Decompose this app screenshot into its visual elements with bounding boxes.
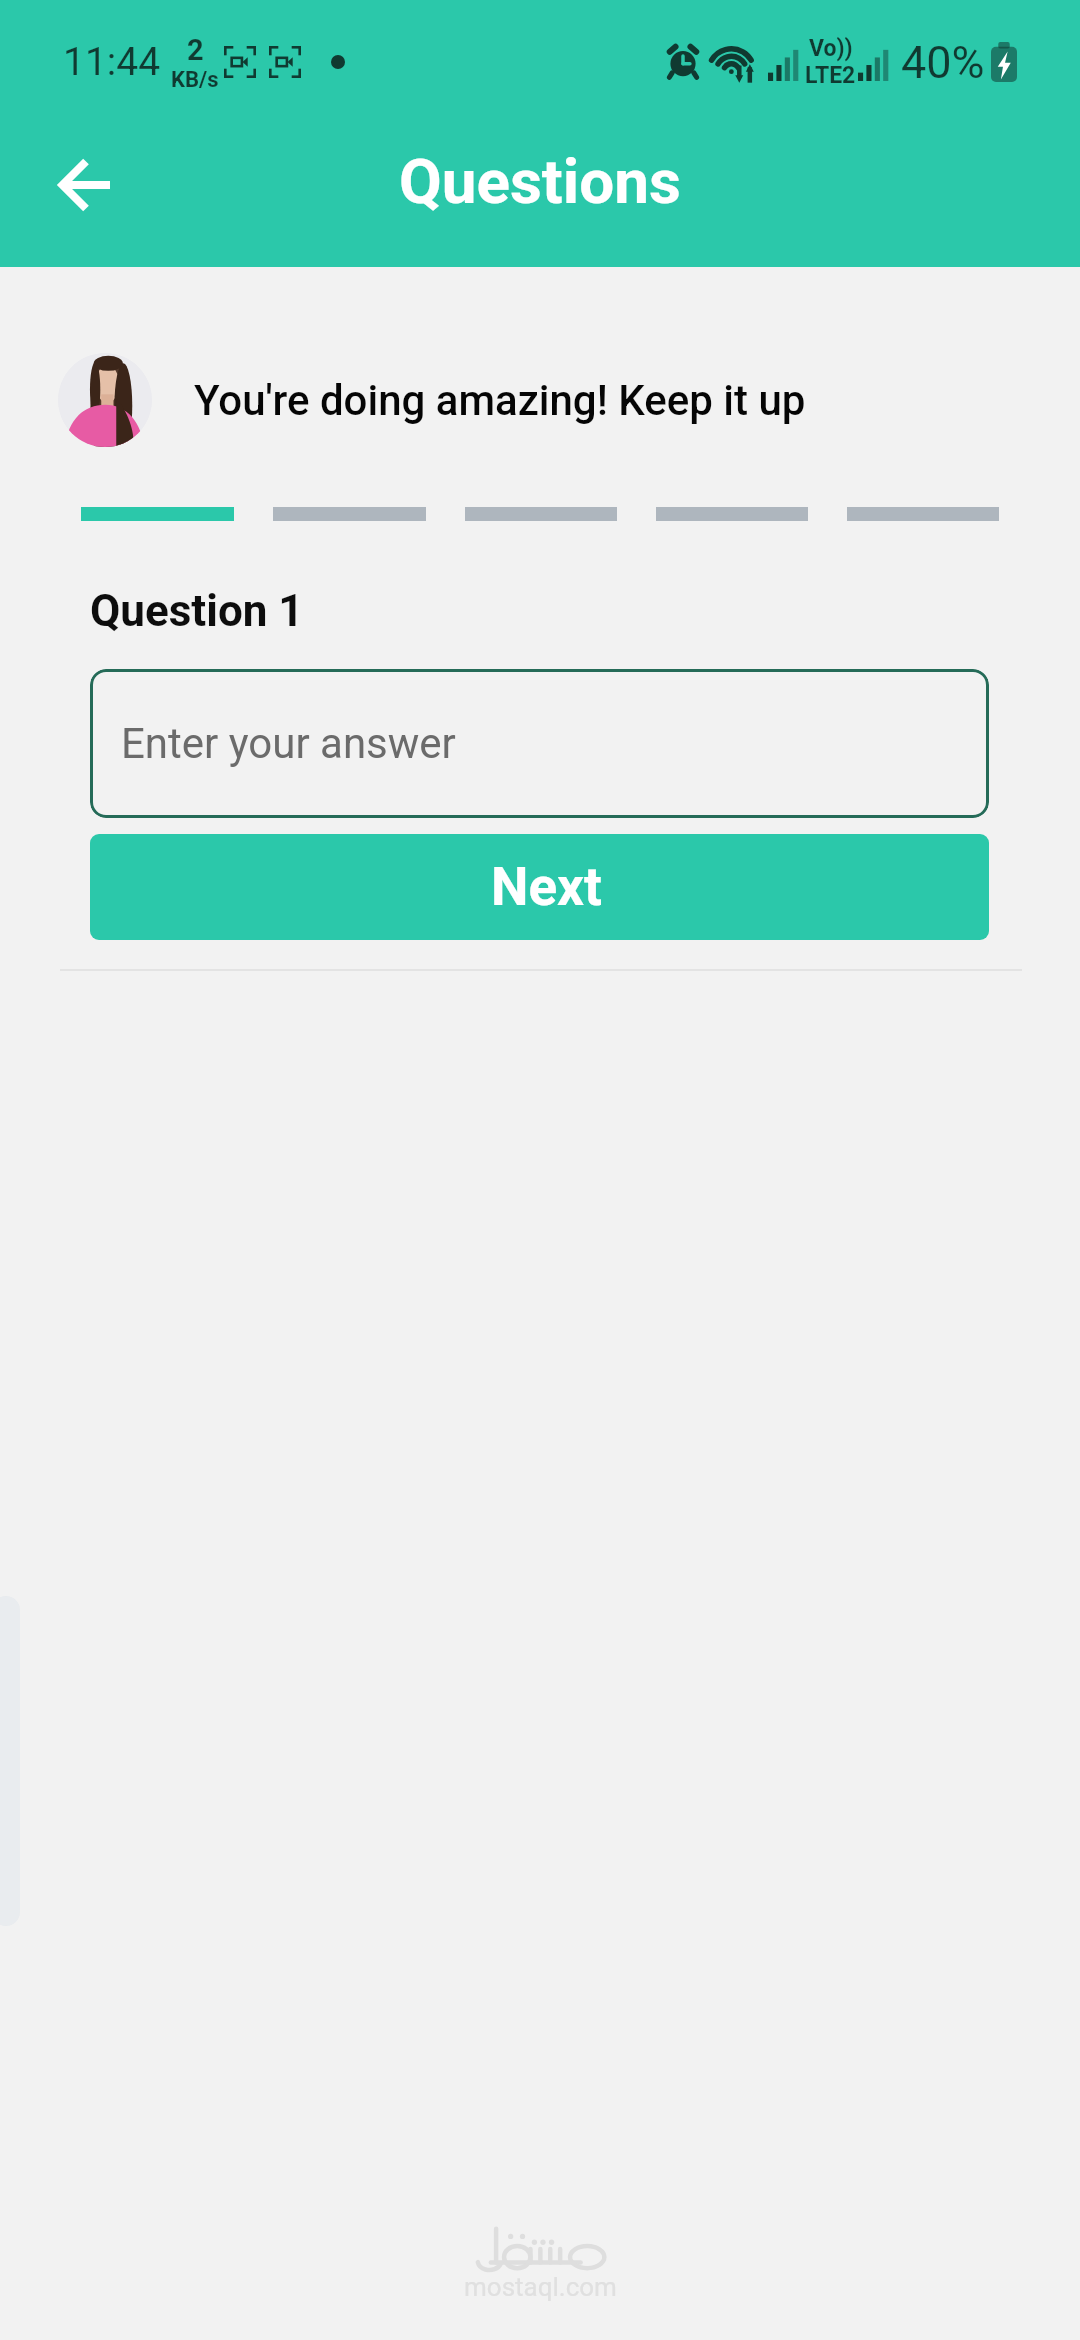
staticText: 2 xyxy=(187,33,204,67)
button[interactable]: Next xyxy=(90,834,989,940)
staticText: mostaql.com xyxy=(464,2272,617,2302)
button[interactable]: Enter your answer xyxy=(90,669,989,818)
staticText: LTE2 xyxy=(805,62,856,89)
staticText: Enter your answer xyxy=(121,719,456,768)
button[interactable]: Back xyxy=(35,135,135,235)
staticText: 11:44 xyxy=(63,39,161,85)
staticText: Next xyxy=(491,856,602,918)
staticText: 40% xyxy=(901,36,985,89)
staticText: KB/s xyxy=(171,67,219,93)
staticText: Questions xyxy=(399,145,681,218)
staticText: You're doing amazing! Keep it up xyxy=(194,376,806,425)
staticText: Question 1 xyxy=(90,585,304,637)
staticText: Vo)) xyxy=(809,35,853,62)
